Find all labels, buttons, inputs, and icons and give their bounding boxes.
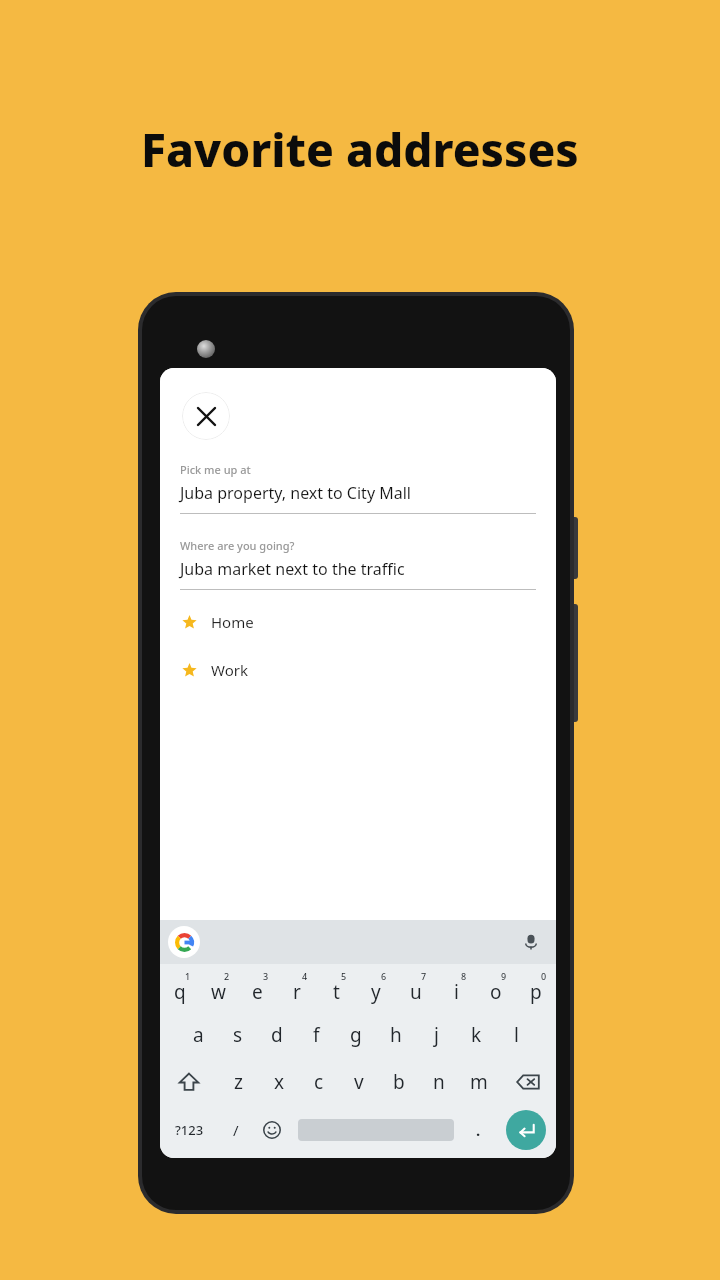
- button[interactable]: a: [179, 1011, 218, 1058]
- button[interactable]: Close: [182, 392, 230, 440]
- staticText: l: [514, 1022, 519, 1048]
- staticText: z: [234, 1069, 243, 1095]
- button[interactable]: 7: [396, 964, 436, 1011]
- button[interactable]: h: [376, 1011, 416, 1058]
- button[interactable]: 6: [356, 964, 396, 1011]
- button[interactable]: 4: [277, 964, 316, 1011]
- button[interactable]: .: [461, 1105, 495, 1154]
- staticText: t: [333, 979, 340, 1005]
- button[interactable]: Voice input: [516, 927, 546, 957]
- staticText: 5: [341, 970, 347, 982]
- staticText: k: [471, 1022, 482, 1048]
- staticText: 4: [302, 970, 308, 982]
- staticText: Favorite addresses: [141, 118, 579, 181]
- staticText: 3: [263, 970, 269, 982]
- staticText: /: [233, 1120, 239, 1140]
- button[interactable]: b: [379, 1058, 419, 1105]
- staticText: x: [274, 1069, 285, 1095]
- staticText: .: [476, 1120, 481, 1140]
- button[interactable]: d: [257, 1011, 296, 1058]
- staticText: q: [174, 979, 186, 1005]
- staticText: s: [233, 1022, 243, 1048]
- button[interactable]: 1: [160, 964, 199, 1011]
- button[interactable]: Google: [168, 926, 200, 958]
- button[interactable]: Home: [160, 612, 556, 632]
- staticText: p: [530, 979, 542, 1005]
- button[interactable]: ?123: [160, 1105, 219, 1154]
- button[interactable]: j: [416, 1011, 456, 1058]
- staticText: n: [433, 1069, 445, 1095]
- button[interactable]: l: [496, 1011, 536, 1058]
- button[interactable]: x: [259, 1058, 299, 1105]
- staticText: 6: [381, 970, 387, 982]
- button[interactable]: s: [218, 1011, 257, 1058]
- staticText: w: [211, 979, 226, 1005]
- staticText: e: [252, 979, 263, 1005]
- staticText: Work: [211, 660, 248, 680]
- button[interactable]: Emoji: [253, 1105, 291, 1154]
- staticText: 0: [541, 970, 547, 982]
- button[interactable]: Where are you going?: [180, 538, 536, 590]
- staticText: v: [354, 1069, 364, 1095]
- button[interactable]: Space: [291, 1105, 461, 1154]
- staticText: ?123: [175, 1121, 204, 1139]
- button[interactable]: Enter: [506, 1110, 546, 1150]
- button[interactable]: 9: [476, 964, 516, 1011]
- button[interactable]: 5: [316, 964, 356, 1011]
- button[interactable]: f: [296, 1011, 336, 1058]
- staticText: m: [470, 1069, 488, 1095]
- staticText: b: [393, 1069, 405, 1095]
- button[interactable]: c: [299, 1058, 339, 1105]
- button[interactable]: 0: [516, 964, 556, 1011]
- staticText: j: [434, 1022, 439, 1048]
- button[interactable]: Work: [160, 660, 556, 680]
- staticText: g: [350, 1022, 362, 1048]
- staticText: c: [314, 1069, 324, 1095]
- staticText: y: [371, 979, 381, 1005]
- staticText: 1: [185, 970, 191, 982]
- staticText: r: [293, 979, 301, 1005]
- button[interactable]: /: [219, 1105, 253, 1154]
- staticText: h: [390, 1022, 402, 1048]
- button[interactable]: z: [218, 1058, 259, 1105]
- button[interactable]: 3: [238, 964, 277, 1011]
- button[interactable]: Backspace: [499, 1058, 556, 1105]
- button[interactable]: v: [339, 1058, 379, 1105]
- button[interactable]: m: [459, 1058, 499, 1105]
- staticText: d: [271, 1022, 283, 1048]
- button[interactable]: 2: [199, 964, 238, 1011]
- staticText: o: [490, 979, 502, 1005]
- staticText: u: [410, 979, 422, 1005]
- button[interactable]: Shift: [160, 1058, 218, 1105]
- staticText: i: [454, 979, 459, 1005]
- staticText: Pick me up at: [180, 462, 251, 477]
- staticText: Where are you going?: [180, 538, 295, 553]
- button[interactable]: g: [336, 1011, 376, 1058]
- staticText: a: [193, 1022, 204, 1048]
- staticText: 8: [461, 970, 467, 982]
- button[interactable]: k: [456, 1011, 496, 1058]
- button[interactable]: Pick me up at: [180, 462, 536, 514]
- staticText: f: [313, 1022, 320, 1048]
- staticText: Juba property, next to City Mall: [180, 482, 411, 504]
- staticText: 7: [421, 970, 427, 982]
- staticText: 2: [224, 970, 230, 982]
- button[interactable]: 8: [436, 964, 476, 1011]
- staticText: Juba market next to the traffic: [180, 558, 405, 580]
- staticText: 9: [501, 970, 507, 982]
- button[interactable]: n: [419, 1058, 459, 1105]
- staticText: Home: [211, 612, 254, 632]
